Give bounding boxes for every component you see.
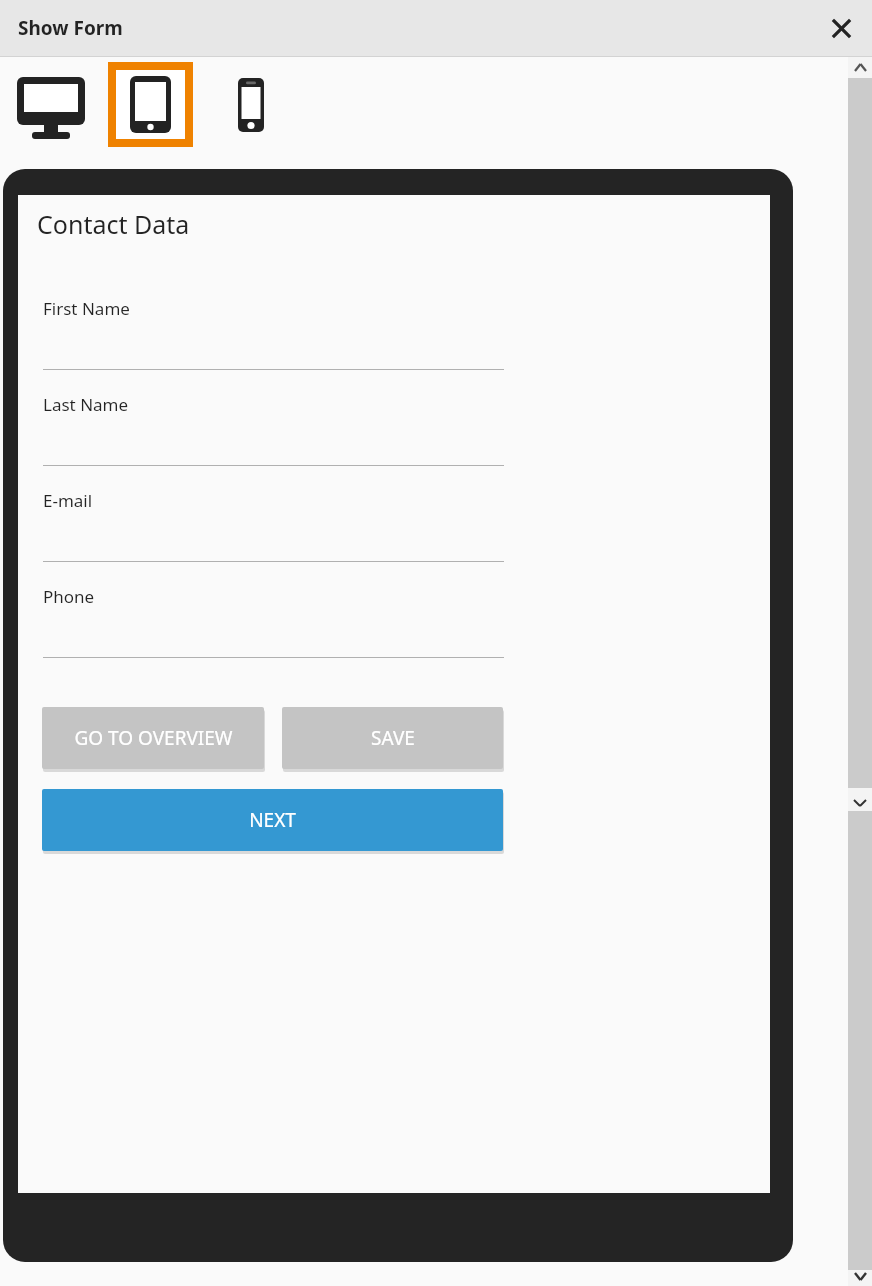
button[interactable]: Desktop preview bbox=[8, 66, 96, 140]
button[interactable]: Scroll up bbox=[848, 57, 872, 77]
staticText: E-mail bbox=[43, 489, 93, 512]
staticText: Last Name bbox=[43, 393, 129, 416]
staticText: NEXT bbox=[249, 807, 296, 833]
button[interactable]: GO TO OVERVIEW bbox=[42, 707, 264, 769]
staticText: GO TO OVERVIEW bbox=[74, 725, 233, 751]
button[interactable]: NEXT bbox=[42, 789, 503, 851]
button[interactable]: Tablet preview, selected bbox=[108, 62, 193, 147]
staticText: Phone bbox=[43, 585, 95, 608]
staticText: Show Form bbox=[18, 15, 123, 41]
staticText: SAVE bbox=[371, 725, 415, 751]
staticText: First Name bbox=[43, 297, 130, 320]
button[interactable]: Close bbox=[824, 11, 858, 45]
button[interactable]: Scroll down bbox=[848, 1266, 872, 1286]
button[interactable]: Phone preview bbox=[230, 70, 274, 140]
button[interactable]: SAVE bbox=[282, 707, 503, 769]
staticText: Contact Data bbox=[37, 207, 190, 241]
